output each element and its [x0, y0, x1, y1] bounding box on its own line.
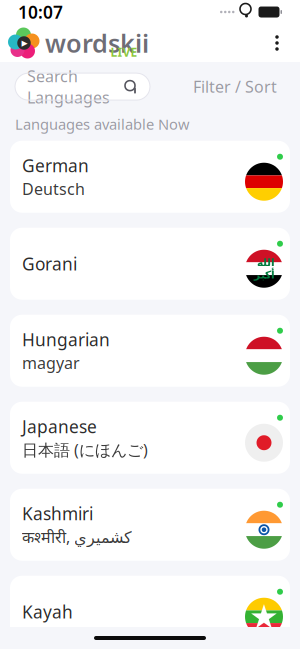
button[interactable]: Filter / Sort — [187, 70, 283, 103]
staticText: Gorani — [22, 252, 77, 275]
staticText: कश्मीरी, کشمیري — [22, 526, 132, 547]
staticText: Japanese — [22, 415, 97, 438]
button[interactable]: Japanese — [0, 402, 300, 474]
button[interactable]: More options — [260, 26, 294, 60]
button[interactable]: German — [0, 141, 300, 213]
button[interactable]: Gorani — [0, 228, 300, 300]
staticText: ★ — [249, 598, 279, 636]
button[interactable]: Kashmiri — [0, 489, 300, 561]
staticText: 10:07 — [18, 0, 63, 23]
staticText: الله أكبر — [253, 257, 274, 281]
staticText: Kayah — [22, 600, 73, 623]
staticText: German — [22, 154, 89, 177]
staticText: Filter / Sort — [193, 76, 277, 97]
button[interactable]: Hungarian — [0, 315, 300, 387]
staticText: Languages available Now — [15, 114, 190, 134]
button[interactable]: Search Languages — [15, 73, 150, 100]
button[interactable]: Kayah — [0, 576, 300, 648]
staticText: magyar — [22, 352, 80, 373]
staticText: wordskii — [45, 26, 149, 60]
staticText: Search Languages — [27, 65, 110, 108]
staticText: 日本語 (にほんご) — [22, 439, 148, 460]
staticText: Deutsch — [22, 178, 85, 199]
staticText: LIVE — [110, 44, 137, 60]
staticText: Kashmiri — [22, 502, 93, 525]
staticText: ▶ — [21, 38, 27, 48]
staticText: Hungarian — [22, 328, 110, 351]
